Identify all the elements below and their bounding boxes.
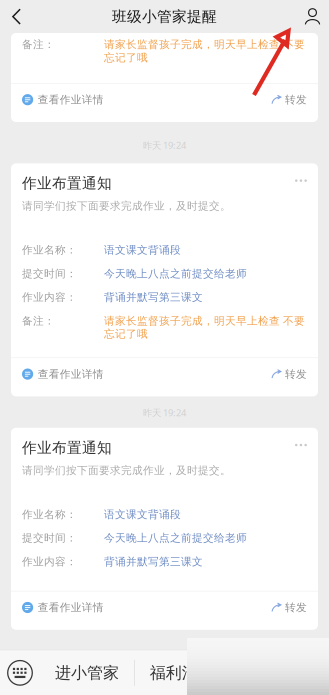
staticText: 班级小管家提醒 — [112, 7, 217, 25]
staticText: 作业内容： — [22, 291, 77, 304]
staticText: 提交时间： — [22, 531, 77, 545]
staticText: 昨天 19:24 — [143, 139, 186, 151]
button[interactable]: 备注： — [11, 33, 318, 122]
staticText: 作业布置通知 — [22, 439, 112, 457]
staticText: 语文课文背诵段 — [104, 508, 181, 521]
staticText: 查看作业详情 — [38, 367, 104, 381]
button[interactable]: 查看作业详情 — [11, 591, 115, 623]
staticText: 作业布置通知 — [22, 174, 112, 192]
staticText: 作业内容： — [22, 555, 77, 568]
staticText: 请家长监督孩子完成，明天早上检查 不要忘记了哦 — [104, 314, 305, 340]
staticText: 提交时间： — [22, 267, 77, 280]
button[interactable]: Back — [0, 0, 33, 33]
staticText: 语文课文背诵段 — [104, 243, 181, 257]
button[interactable]: Keyboard — [0, 651, 40, 695]
staticText: 请同学们按下面要求完成作业，及时提交。 — [22, 199, 231, 212]
button[interactable]: 福利活动 — [135, 651, 229, 695]
staticText: 昨天 19:24 — [143, 406, 186, 419]
staticText: 作业名称： — [22, 508, 77, 521]
staticText: 备注： — [22, 38, 55, 51]
staticText: 今天晚上八点之前提交给老师 — [104, 531, 247, 545]
button[interactable]: 进小管家 — [40, 651, 134, 695]
staticText: 背诵并默写第三课文 — [104, 555, 203, 568]
staticText: 转发 — [285, 601, 307, 614]
staticText: 转发 — [285, 367, 307, 381]
staticText: 查看作业详情 — [38, 601, 104, 614]
button[interactable]: 作业布置通知 — [11, 163, 318, 396]
staticText: 进小管家 — [55, 663, 119, 683]
staticText: 查看作业详情 — [38, 93, 104, 106]
staticText: 作业名称： — [22, 243, 77, 257]
staticText: 背诵并默写第三课文 — [104, 291, 203, 304]
staticText: 福利活动 — [150, 663, 214, 683]
button[interactable]: Group members — [296, 0, 329, 33]
button[interactable]: 转发 — [260, 358, 318, 390]
button[interactable]: 转发 — [260, 84, 318, 116]
button[interactable]: 查看作业详情 — [11, 358, 115, 390]
staticText: 备注： — [22, 314, 55, 327]
staticText: 今天晚上八点之前提交给老师 — [104, 267, 247, 280]
button[interactable]: 查看作业详情 — [11, 84, 115, 116]
staticText: 转发 — [285, 93, 307, 106]
staticText: 请家长监督孩子完成，明天早上检查 不要忘记了哦 — [104, 38, 305, 64]
button[interactable]: 作业布置通知 — [11, 428, 318, 630]
button[interactable]: 转发 — [260, 591, 318, 623]
staticText: 请同学们按下面要求完成作业，及时提交。 — [22, 464, 231, 477]
